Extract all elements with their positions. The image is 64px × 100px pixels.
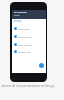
button[interactable]: Upper Strength [12, 41, 46, 49]
staticText: Total Body HIIT [18, 36, 32, 39]
button[interactable]: Add workout [39, 63, 44, 68]
button[interactable]: Evening Yoga [12, 48, 46, 56]
staticText: Evening Yoga [18, 51, 30, 54]
button[interactable]: Total Body HIIT [12, 33, 46, 41]
staticText: Access all of your workouts on the go [1, 84, 55, 88]
staticText: Morning Run [18, 28, 30, 31]
staticText: My Workouts [14, 11, 27, 14]
button[interactable]: Morning Run [12, 25, 46, 33]
staticText: Today [14, 14, 20, 17]
staticText: Upper Strength [18, 44, 32, 47]
